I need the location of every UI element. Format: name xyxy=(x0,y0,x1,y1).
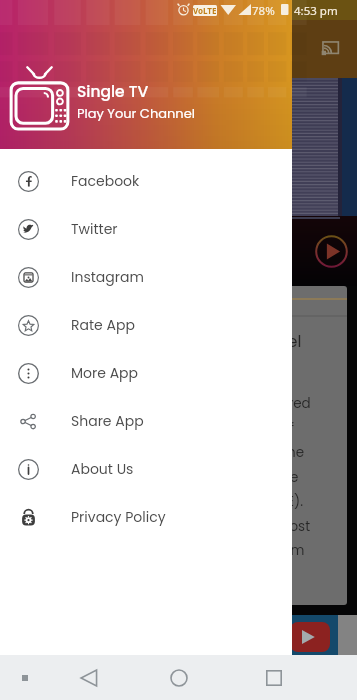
button[interactable]: About Us xyxy=(0,445,292,493)
button[interactable]: Home xyxy=(164,663,194,693)
button[interactable]: Play xyxy=(315,235,348,268)
staticText: API of xyxy=(257,419,294,438)
staticText: Rate App xyxy=(71,315,135,335)
staticText: Play Your Channel xyxy=(77,104,195,122)
staticText: 4:53 pm xyxy=(294,3,338,19)
button[interactable]: Facebook xyxy=(0,157,292,205)
staticText: Single TV - Play Your Channel xyxy=(67,330,302,352)
staticText: powered xyxy=(251,394,311,413)
button[interactable]: Menu xyxy=(14,667,36,689)
staticText: More App xyxy=(71,363,139,383)
button[interactable]: Privacy Policy xyxy=(0,493,292,541)
button[interactable]: Instagram xyxy=(0,253,292,301)
button[interactable]: Back xyxy=(74,663,104,693)
button[interactable]: Rate App xyxy=(0,301,292,349)
staticText: not host xyxy=(255,517,311,536)
staticText: by the xyxy=(256,468,299,487)
button[interactable]: Cast xyxy=(315,34,345,64)
staticText: 78% xyxy=(252,3,275,19)
staticText: stream xyxy=(256,541,305,560)
button[interactable]: Share App xyxy=(0,397,292,445)
staticText: VoLTE xyxy=(193,5,217,16)
staticText: thin the xyxy=(253,443,305,462)
staticText: Facebook xyxy=(71,171,140,191)
button[interactable]: Twitter xyxy=(0,205,292,253)
staticText: Single TV xyxy=(77,81,149,103)
staticText: Instagram xyxy=(71,267,144,287)
staticText: Share App xyxy=(71,411,144,431)
staticText: ICENSE). xyxy=(249,492,303,511)
staticText: About Us xyxy=(71,459,134,479)
button[interactable]: Watch on YouTube xyxy=(290,622,330,652)
staticText: Twitter xyxy=(71,219,118,239)
button[interactable]: Recents xyxy=(259,663,289,693)
button[interactable]: More App xyxy=(0,349,292,397)
staticText: Privacy Policy xyxy=(71,507,166,527)
